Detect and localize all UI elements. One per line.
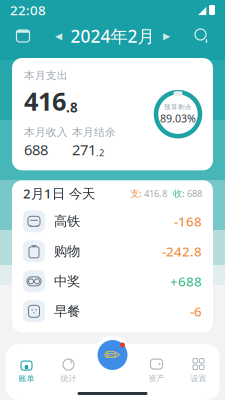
- button[interactable]: Previous month: [51, 27, 65, 45]
- staticText: 收:: [167, 187, 185, 199]
- staticText: .2: [96, 146, 104, 159]
- staticText: 中奖: [54, 273, 80, 289]
- staticText: -242.8: [162, 242, 202, 260]
- button[interactable]: 中奖: [12, 266, 213, 296]
- staticText: 设置: [190, 374, 206, 383]
- staticText: 271: [72, 140, 96, 159]
- staticText: ◢: [198, 4, 206, 16]
- staticText: 支:: [130, 187, 142, 199]
- staticText: .8: [66, 98, 78, 116]
- staticText: 89.03%: [160, 111, 196, 125]
- staticText: +688: [170, 272, 202, 290]
- staticText: 购物: [54, 243, 80, 259]
- button[interactable]: 设置: [177, 353, 219, 387]
- staticText: 22:08: [10, 1, 46, 19]
- button[interactable]: Add record: [90, 333, 134, 377]
- button[interactable]: Search: [187, 21, 217, 51]
- button[interactable]: 早餐: [12, 296, 213, 326]
- button[interactable]: 统计: [47, 353, 89, 387]
- staticText: 688: [185, 187, 202, 199]
- staticText: -168: [174, 212, 202, 230]
- button[interactable]: 购物: [12, 236, 213, 266]
- staticText: 账单: [18, 374, 34, 383]
- button[interactable]: 账单: [5, 353, 47, 387]
- staticText: ▶: [163, 31, 170, 41]
- button[interactable]: 资产: [135, 353, 177, 387]
- staticText: 688: [24, 140, 48, 159]
- staticText: ◀: [55, 31, 62, 41]
- staticText: 预算剩余: [164, 103, 192, 111]
- staticText: 416: [24, 84, 66, 118]
- staticText: 早餐: [54, 303, 80, 319]
- staticText: 高铁: [54, 213, 80, 229]
- staticText: 本月结余: [72, 126, 116, 139]
- button[interactable]: 高铁: [12, 206, 213, 236]
- staticText: ✏︎: [104, 344, 121, 366]
- staticText: 本月收入: [24, 126, 68, 139]
- button[interactable]: Next month: [159, 27, 173, 45]
- staticText: -6: [190, 302, 202, 320]
- staticText: 416.8: [142, 187, 167, 199]
- staticText: 2024年2月: [70, 24, 154, 47]
- button[interactable]: Calendar: [8, 21, 38, 51]
- staticText: 本月支出: [24, 69, 68, 82]
- staticText: 统计: [60, 374, 76, 383]
- staticText: 2月1日 今天: [23, 184, 95, 202]
- staticText: 资产: [148, 374, 164, 383]
